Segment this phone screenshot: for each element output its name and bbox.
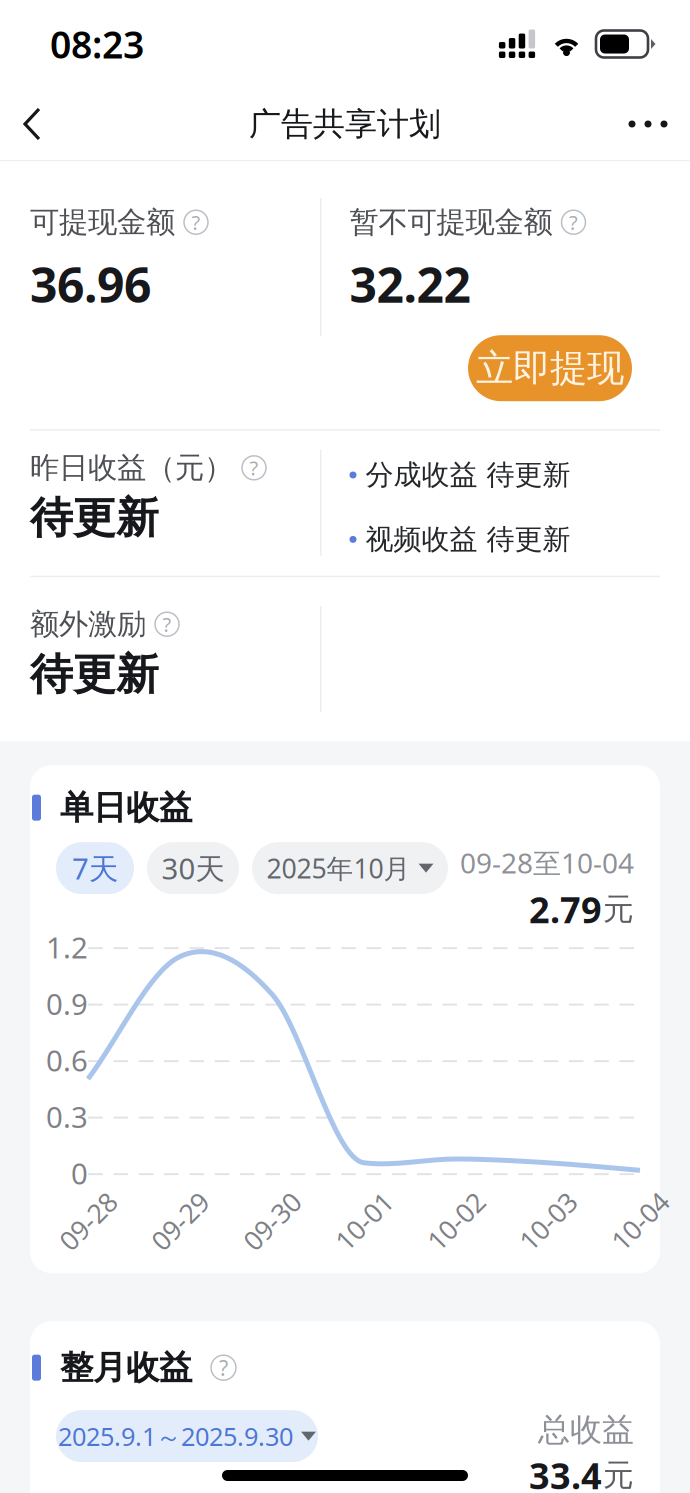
staticText: 分成收益 — [365, 458, 477, 492]
button[interactable]: 立即提现 — [468, 335, 632, 401]
staticText: 0 — [71, 1154, 88, 1193]
staticText: 可提现金额 — [30, 204, 175, 240]
staticText: 2025年10月 — [266, 850, 410, 886]
staticText: 额外激励 — [30, 606, 146, 642]
staticText: 09-28 — [53, 1203, 122, 1239]
staticText: 08:23 — [50, 19, 144, 69]
staticText: 待更新 — [486, 522, 570, 557]
staticText: 10-03 — [513, 1203, 582, 1239]
staticText: 0.9 — [46, 984, 88, 1023]
button[interactable]: 2025年10月 — [252, 842, 448, 894]
staticText: ? — [219, 1353, 228, 1382]
staticText: 10-01 — [329, 1203, 398, 1239]
button[interactable]: 30天 — [147, 842, 239, 894]
staticText: 总收益 — [538, 1410, 634, 1449]
staticText: 09-29 — [145, 1203, 214, 1239]
staticText: 昨日收益（元） — [30, 450, 233, 486]
staticText: 30天 — [161, 849, 224, 888]
button[interactable]: Back — [0, 90, 60, 158]
staticText: ? — [569, 209, 578, 235]
staticText: 待更新 — [486, 458, 570, 492]
staticText: 元 — [603, 890, 634, 928]
staticText: 09-28至10-04 — [460, 844, 634, 881]
staticText: 10-02 — [421, 1203, 490, 1239]
staticText: 32.22 — [349, 252, 470, 316]
staticText: ? — [162, 611, 171, 637]
staticText: 36.96 — [30, 252, 151, 316]
staticText: ? — [249, 454, 258, 481]
staticText: 1.2 — [46, 928, 88, 967]
staticText: 视频收益 — [365, 522, 477, 557]
button[interactable]: More options — [618, 89, 690, 159]
button[interactable]: 2025.9.1～2025.9.30 — [56, 1410, 318, 1462]
staticText: 立即提现 — [476, 345, 624, 391]
staticText: 10-04 — [605, 1203, 674, 1239]
staticText: 待更新 — [30, 492, 159, 544]
staticText: 整月收益 — [60, 1347, 192, 1388]
button[interactable]: 7天 — [56, 842, 134, 894]
staticText: ? — [191, 209, 200, 235]
staticText: 33.4 — [529, 1451, 602, 1493]
staticText: 0.6 — [46, 1041, 88, 1080]
staticText: 广告共享计划 — [249, 104, 441, 144]
staticText: 待更新 — [30, 648, 159, 701]
staticText: 元 — [603, 1456, 634, 1493]
staticText: 暂不可提现金额 — [349, 204, 552, 240]
staticText: 2025.9.1～2025.9.30 — [58, 1419, 293, 1453]
staticText: 7天 — [72, 849, 118, 888]
staticText: 2.79 — [529, 885, 602, 933]
staticText: 0.3 — [46, 1097, 88, 1136]
staticText: 单日收益 — [60, 787, 192, 828]
staticText: 09-30 — [237, 1203, 306, 1239]
